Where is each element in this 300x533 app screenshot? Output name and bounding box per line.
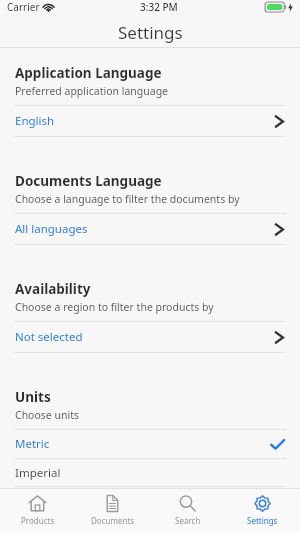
other: Selected [270,438,285,451]
staticText: English [15,113,55,129]
staticText: Not selected [15,329,83,345]
staticText: Preferred application language [15,84,169,98]
staticText: Units [15,388,51,406]
other: Open [274,113,285,130]
button[interactable]: Settings [225,489,300,533]
staticText: Settings [247,515,278,526]
staticText: Availability [15,280,91,298]
staticText: Choose a language to filter the document… [15,192,240,206]
staticText: Carrier [7,0,40,14]
staticText: All languages [15,221,88,237]
button[interactable]: Documents [75,489,150,533]
staticText: Products [21,515,55,526]
other: Open [274,221,285,238]
button[interactable]: Imperial [0,459,300,486]
staticText: Choose a region to filter the products b… [15,300,214,314]
staticText: 3:32 PM [140,0,178,14]
staticText: Choose units [15,408,80,422]
staticText: Settings [118,21,183,44]
staticText: Documents [91,515,135,526]
other: Open [274,329,285,346]
staticText: Application Language [15,64,162,82]
button[interactable]: Not selected [0,322,300,352]
button[interactable]: All languages [0,214,300,244]
button[interactable]: Products [0,489,75,533]
staticText: Search [175,515,201,526]
staticText: Metric [15,436,50,452]
staticText: Imperial [15,465,61,481]
staticText: Documents Language [15,172,162,190]
button[interactable]: Metric [0,430,300,458]
button[interactable]: English [0,106,300,136]
button[interactable]: Search [150,489,225,533]
